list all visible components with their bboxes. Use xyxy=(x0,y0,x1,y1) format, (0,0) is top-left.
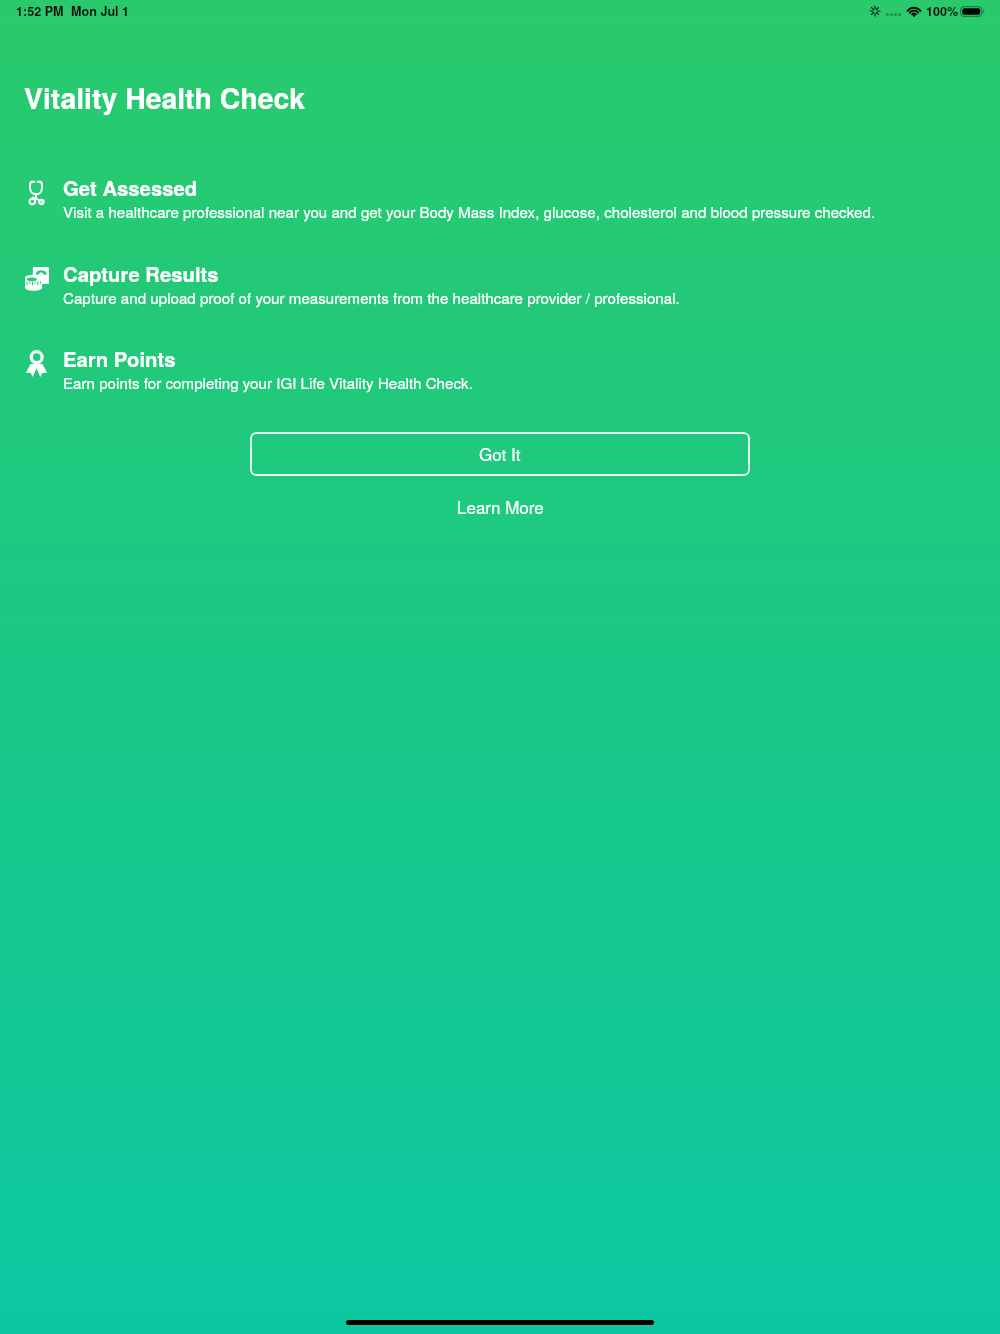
staticText: Mon Jul 1 xyxy=(71,2,130,20)
staticText: Learn More xyxy=(457,494,544,518)
staticText: Capture and upload proof of your measure… xyxy=(63,287,680,309)
other: Wi-Fi xyxy=(907,7,921,16)
other: Award ribbon xyxy=(26,351,47,377)
button[interactable]: Got It xyxy=(250,432,750,476)
staticText: 100% xyxy=(926,2,959,20)
other: Stethoscope xyxy=(28,181,45,206)
staticText: Capture Results xyxy=(63,259,219,288)
other: Weighing scale xyxy=(25,267,49,290)
staticText: Get Assessed xyxy=(63,173,198,202)
staticText: Visit a healthcare professional near you… xyxy=(63,201,876,223)
staticText: 1:52 PM xyxy=(16,2,64,20)
other: Battery 100 percent xyxy=(960,6,985,17)
button[interactable]: Learn More xyxy=(443,489,558,523)
staticText: Earn points for completing your IGI Life… xyxy=(63,372,473,394)
staticText: Earn Points xyxy=(63,344,176,373)
staticText: Got It xyxy=(479,441,521,465)
other: Activity indicator xyxy=(870,6,880,16)
other: Cellular signal xyxy=(886,13,901,16)
staticText: Vitality Health Check xyxy=(24,77,306,118)
